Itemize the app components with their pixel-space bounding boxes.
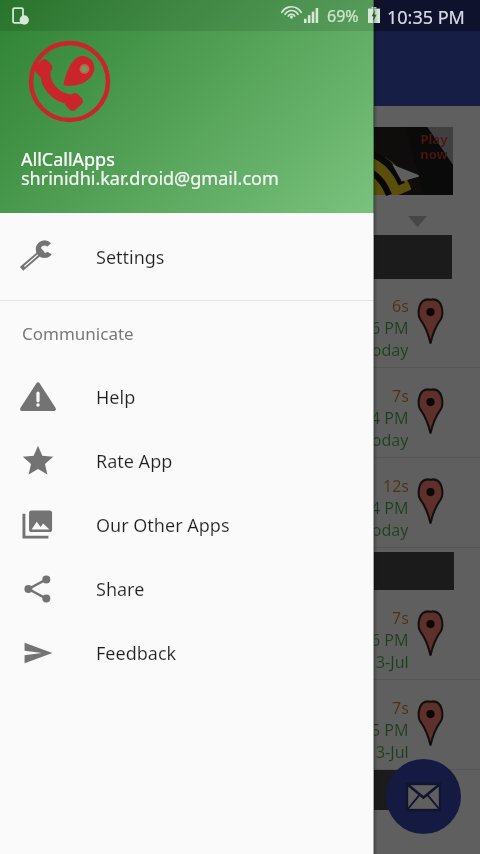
button[interactable]: 7s [0, 368, 480, 458]
staticText: 12s [383, 475, 409, 497]
button[interactable]: 12s [0, 458, 480, 548]
staticText: Share [96, 577, 145, 602]
staticText: Today [364, 339, 409, 361]
staticText: Rate App [96, 449, 173, 474]
staticText: 6 PM [371, 317, 409, 339]
button[interactable]: Our Other Apps [0, 493, 374, 557]
staticText: 3-Jul [376, 741, 409, 763]
staticText: Help [96, 385, 136, 410]
staticText: Feedback [96, 641, 177, 666]
staticText: 7s [392, 697, 409, 719]
staticText: Our Other Apps [96, 513, 230, 538]
button[interactable]: Feedback [0, 621, 374, 685]
staticText: 6s [392, 295, 409, 317]
button[interactable]: Settings [0, 225, 374, 289]
staticText: 4 PM [371, 407, 409, 429]
staticText: 5 PM [371, 719, 409, 741]
button[interactable]: Rate App [0, 429, 374, 493]
staticText: Today [364, 519, 409, 541]
staticText: 3-Jul [376, 651, 409, 673]
staticText: shrinidhi.kar.droid@gmail.com [21, 166, 279, 191]
button[interactable]: Send message [386, 759, 461, 834]
button[interactable]: 6s [0, 278, 480, 368]
staticText: Play now [420, 130, 448, 163]
staticText: Settings [96, 245, 165, 270]
staticText: 10:35 PM [387, 5, 465, 30]
button[interactable]: Share [0, 557, 374, 621]
button[interactable]: 7s [0, 680, 480, 770]
button[interactable]: 7s [0, 590, 480, 680]
staticText: 7s [392, 607, 409, 629]
staticText: 4 PM [371, 497, 409, 519]
staticText: 6 PM [371, 629, 409, 651]
staticText: 7s [392, 385, 409, 407]
staticText: Today [364, 429, 409, 451]
staticText: 69% [327, 5, 359, 27]
staticText: AllCallApps [21, 147, 115, 172]
button[interactable]: Help [0, 365, 374, 429]
staticText: Communicate [22, 322, 134, 345]
